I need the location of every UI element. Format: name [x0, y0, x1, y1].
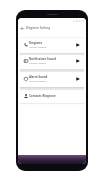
staticText: Notification Sound	[29, 57, 57, 61]
other: Open	[76, 77, 80, 81]
staticText: Ringtone Setting	[26, 26, 51, 30]
staticText: Alarm Sound	[29, 75, 48, 79]
button[interactable]: Notification Sound	[20, 55, 84, 69]
other: Open	[76, 59, 80, 63]
button[interactable]: Alarm Sound	[20, 72, 84, 87]
other: Open	[76, 43, 80, 47]
staticText: Carrara Shadow	[29, 46, 47, 49]
staticText: Ringtone	[29, 41, 43, 45]
staticText: Carrara Shadow	[29, 80, 47, 83]
button[interactable]: Contacts Ringtone	[20, 90, 84, 103]
button[interactable]: Back	[18, 23, 86, 33]
other: Back	[21, 27, 24, 30]
staticText: Carrara Chipset	[29, 62, 46, 65]
button[interactable]: Ringtone	[20, 38, 84, 53]
staticText: Contacts Ringtone	[29, 94, 56, 98]
